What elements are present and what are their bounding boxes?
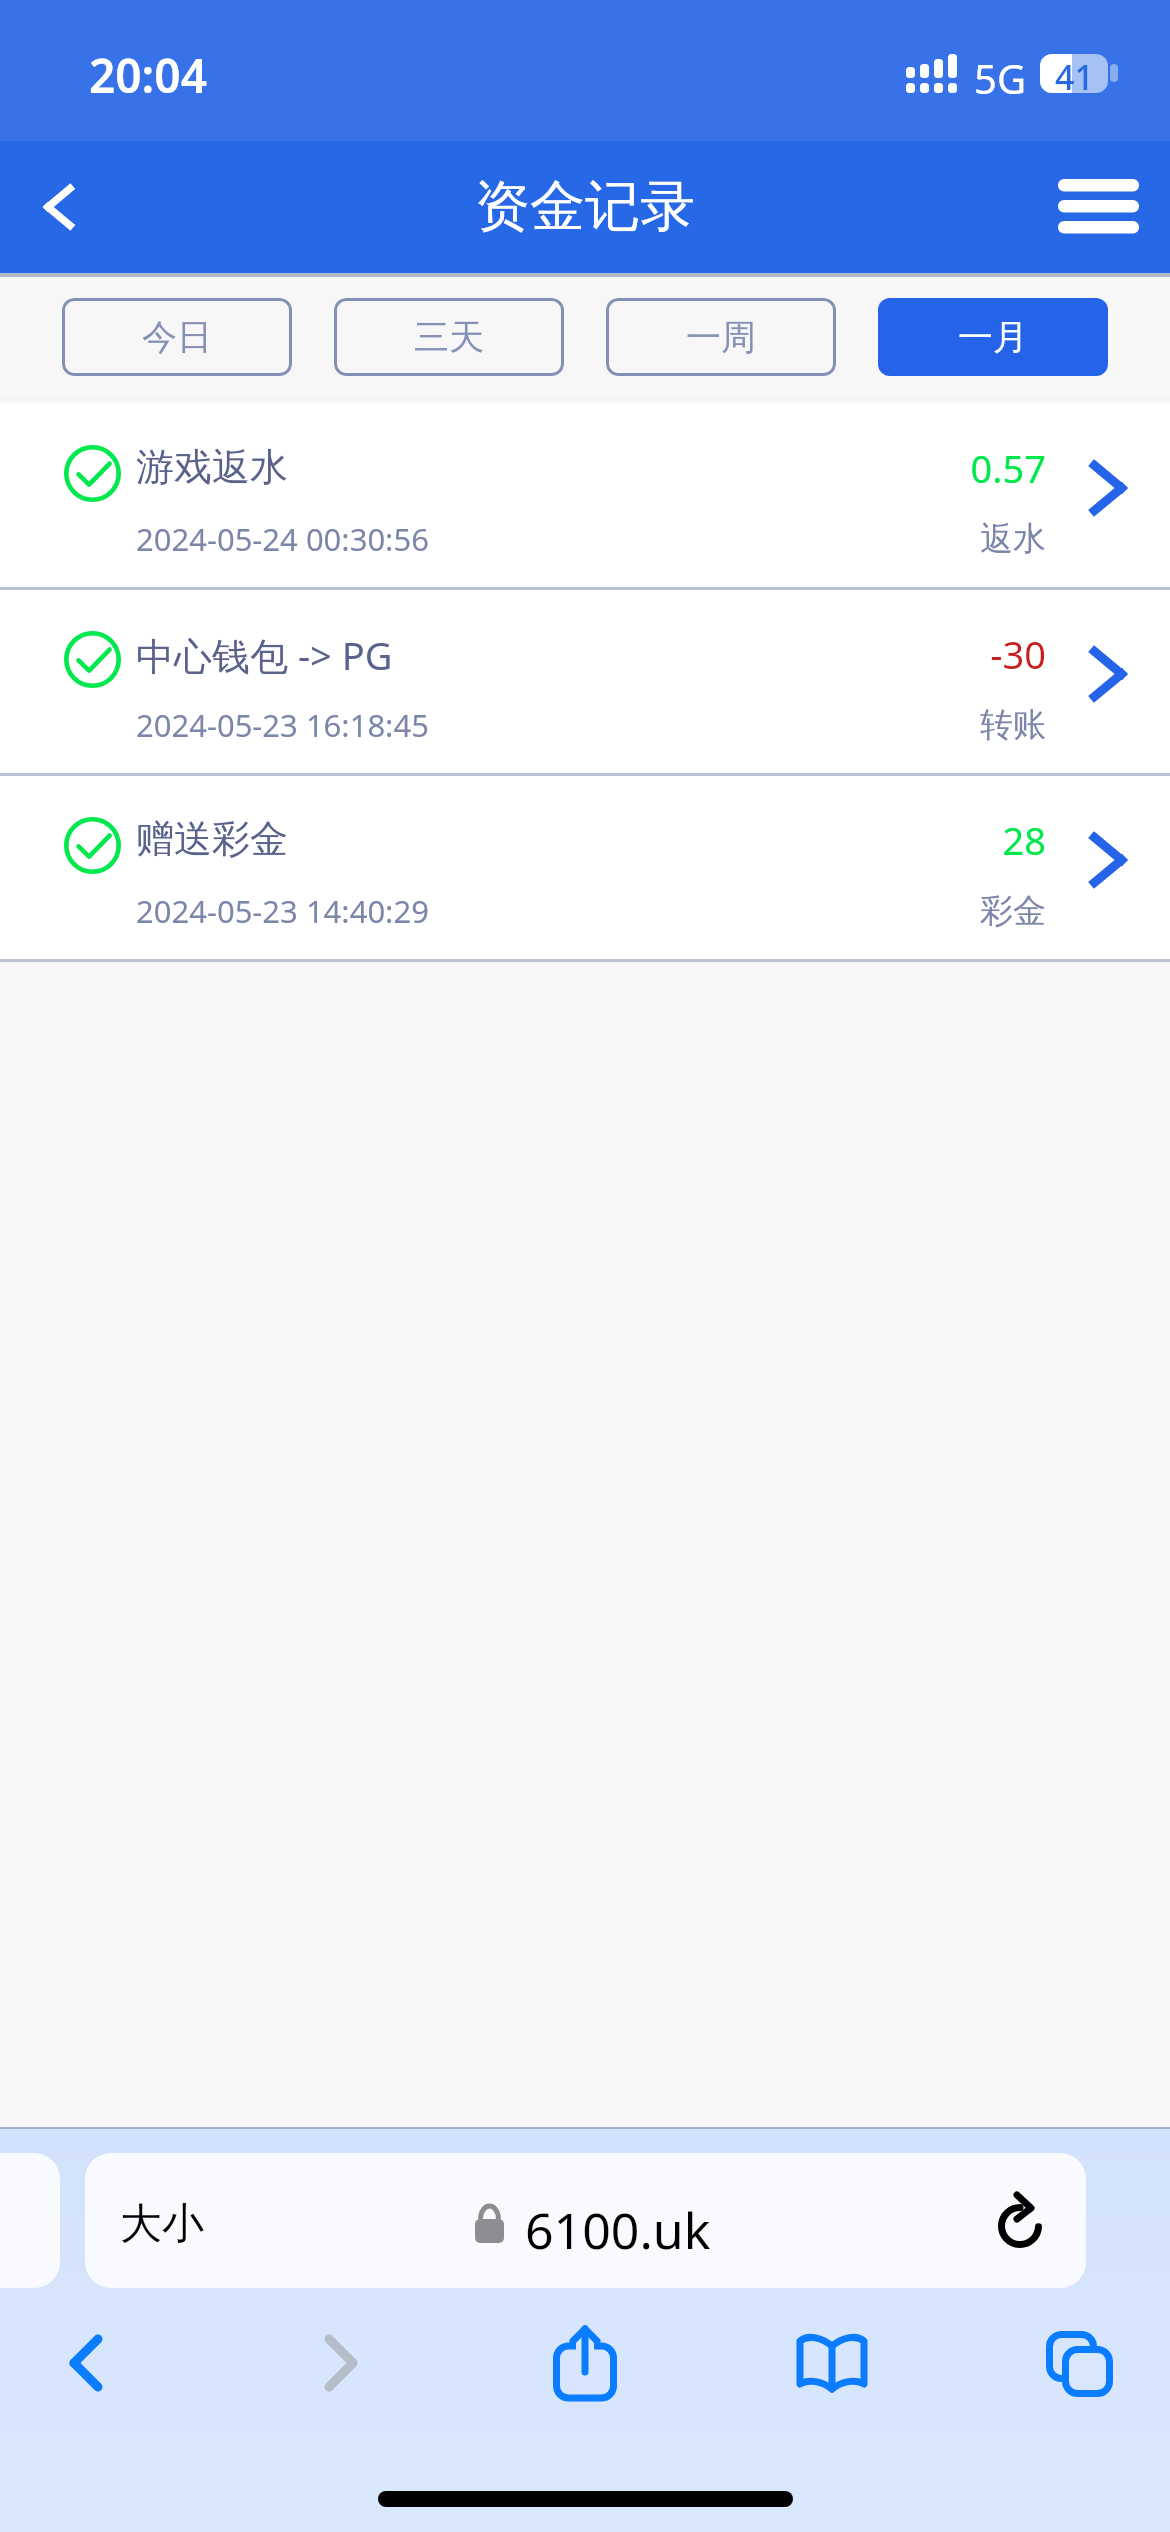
button[interactable]: Back xyxy=(0,141,120,273)
staticText: 2024-05-24 00:30:56 xyxy=(136,518,429,560)
staticText: 返水 xyxy=(760,518,1046,560)
staticText: 游戏返水 xyxy=(136,443,288,491)
button[interactable]: Menu xyxy=(1030,141,1170,273)
button[interactable]: 大小 xyxy=(85,2153,1086,2288)
button[interactable]: Tabs xyxy=(1024,2308,1134,2418)
staticText: 41 xyxy=(1055,54,1094,93)
staticText: 彩金 xyxy=(760,890,1046,932)
staticText: 三天 xyxy=(414,315,484,359)
staticText: 大小 xyxy=(120,2198,204,2251)
staticText: 资金记录 xyxy=(475,172,695,241)
staticText: 一周 xyxy=(686,315,756,359)
staticText: 今日 xyxy=(142,315,212,359)
button[interactable]: 一月 xyxy=(878,298,1108,376)
staticText: 一月 xyxy=(958,315,1028,359)
button[interactable]: 中心钱包 -> PG xyxy=(0,590,1170,773)
staticText: -30 xyxy=(760,628,1046,680)
button[interactable]: Forward xyxy=(286,2308,396,2418)
button[interactable]: Bookmarks xyxy=(777,2308,887,2418)
staticText: 赠送彩金 xyxy=(136,815,288,863)
staticText: 28 xyxy=(760,814,1046,866)
staticText: 0.57 xyxy=(760,442,1046,494)
button[interactable]: 赠送彩金 xyxy=(0,776,1170,959)
staticText: 6100.uk xyxy=(525,2196,711,2264)
staticText: 转账 xyxy=(760,704,1046,746)
button[interactable]: 游戏返水 xyxy=(0,404,1170,587)
staticText: 中心钱包 -> PG xyxy=(136,629,393,681)
staticText: 2024-05-23 14:40:29 xyxy=(136,890,429,932)
staticText: 20:04 xyxy=(89,44,207,107)
button[interactable]: Back xyxy=(31,2308,141,2418)
button[interactable]: Reload xyxy=(966,2153,1086,2288)
staticText: 2024-05-23 16:18:45 xyxy=(136,704,429,746)
button[interactable]: 三天 xyxy=(334,298,564,376)
button[interactable]: Share xyxy=(530,2308,640,2418)
button[interactable]: 一周 xyxy=(606,298,836,376)
staticText: 5G xyxy=(974,51,1026,105)
button[interactable]: 今日 xyxy=(62,298,292,376)
